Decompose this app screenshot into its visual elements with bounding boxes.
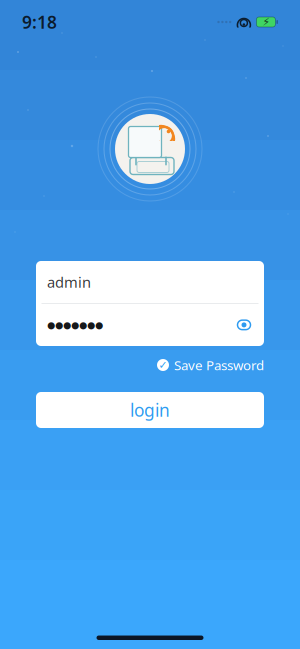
button[interactable]: ●●●●●●● [36,304,264,346]
staticText: ✓ [158,359,167,371]
button[interactable]: admin [36,261,264,303]
staticText: ●●●●●●● [47,320,103,330]
button[interactable]: Show password [235,317,253,333]
button[interactable]: login [36,392,264,428]
button[interactable]: ✓ [157,353,264,377]
staticText: login [130,398,170,421]
staticText: Save Password [174,356,264,374]
staticText: 9:18 [22,10,57,33]
staticText: ⚡︎ [262,16,269,28]
staticText: admin [47,272,91,292]
